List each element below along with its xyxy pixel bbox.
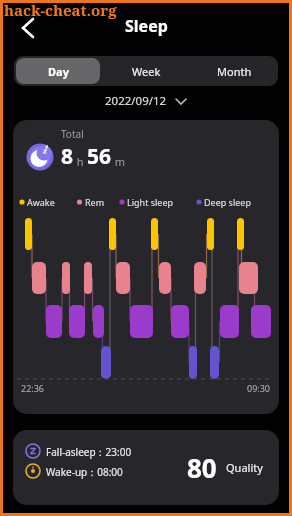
staticText: 80	[187, 450, 217, 485]
staticText: Deep sleep	[204, 196, 251, 208]
button[interactable]: Week	[102, 56, 190, 86]
staticText: Day	[48, 64, 69, 79]
staticText: Quality	[226, 460, 263, 475]
staticText: 2022/09/12	[105, 93, 167, 109]
button[interactable]: Month	[190, 56, 278, 86]
button[interactable]	[12, 12, 44, 44]
staticText: Awake	[27, 196, 55, 208]
staticText: h	[74, 154, 87, 169]
staticText: Fall-asleep：23:00	[46, 445, 132, 459]
staticText: Sleep	[125, 15, 168, 37]
staticText: hack-cheat.org	[4, 0, 117, 20]
staticText: Week	[132, 64, 161, 79]
staticText: Light sleep	[127, 196, 174, 208]
staticText: 8	[61, 142, 74, 171]
button[interactable]: Day	[16, 58, 100, 84]
staticText: 22:36	[21, 382, 45, 394]
staticText: Month	[217, 64, 252, 79]
staticText: Wake-up：08:00	[46, 465, 123, 479]
staticText: Rem	[85, 196, 105, 208]
staticText: 56	[87, 142, 112, 171]
button[interactable]: Fall-asleep：23:00	[13, 430, 279, 505]
staticText: Total	[61, 127, 84, 141]
staticText: 09:30	[247, 382, 271, 394]
button[interactable]: 2022/09/12	[105, 93, 187, 109]
staticText: m	[112, 154, 126, 169]
